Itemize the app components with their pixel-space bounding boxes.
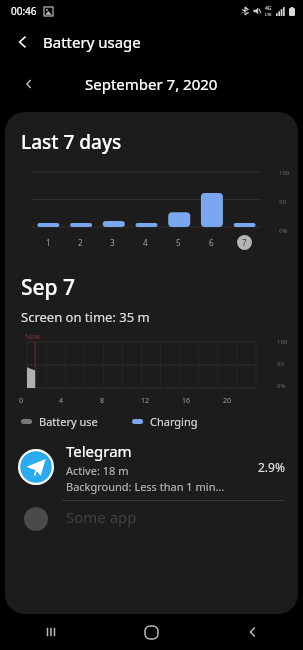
staticText: 100: [279, 169, 290, 177]
staticText: Battery use: [39, 414, 98, 429]
button[interactable]: 7: [237, 235, 252, 250]
button[interactable]: Some app: [5, 501, 298, 531]
staticText: Some app: [66, 507, 137, 527]
staticText: Sep 7: [21, 273, 76, 302]
button[interactable]: Back: [202, 614, 303, 650]
button[interactable]: Back: [6, 25, 40, 59]
staticText: 12: [141, 396, 150, 406]
staticText: 7: [242, 237, 247, 248]
button[interactable]: Telegram: [5, 434, 298, 500]
button[interactable]: 1: [46, 237, 51, 248]
button[interactable]: 4: [143, 237, 148, 248]
button[interactable]: 2: [78, 237, 83, 248]
staticText: 4: [59, 396, 64, 406]
staticText: 4G: [265, 5, 272, 12]
staticText: 16: [182, 396, 191, 406]
staticText: 0%: [279, 227, 288, 235]
staticText: LTE: [265, 12, 272, 17]
staticText: 0: [19, 396, 24, 406]
staticText: 100: [277, 338, 288, 346]
staticText: 2.9%: [258, 459, 285, 475]
staticText: 20: [223, 396, 232, 406]
button[interactable]: 6: [209, 237, 214, 248]
staticText: Screen on time: 35 m: [21, 308, 150, 326]
staticText: Active: 18 m: [66, 463, 129, 478]
button[interactable]: 3: [110, 237, 115, 248]
staticText: Battery usage: [43, 32, 141, 52]
button[interactable]: Previous day: [16, 71, 42, 97]
staticText: 50: [277, 360, 284, 368]
staticText: 50: [279, 198, 286, 206]
button[interactable]: 5: [176, 237, 181, 248]
staticText: Telegram: [66, 441, 132, 461]
staticText: 0%: [277, 382, 286, 390]
staticText: Charging: [150, 414, 198, 429]
staticText: 00:46: [11, 4, 37, 18]
staticText: Background: Less than 1 min…: [66, 479, 225, 494]
staticText: Now: [25, 332, 40, 342]
button[interactable]: Recents: [0, 614, 101, 650]
staticText: September 7, 2020: [85, 74, 218, 94]
button[interactable]: Home: [101, 614, 202, 650]
staticText: 8: [100, 396, 105, 406]
staticText: Last 7 days: [21, 129, 122, 155]
